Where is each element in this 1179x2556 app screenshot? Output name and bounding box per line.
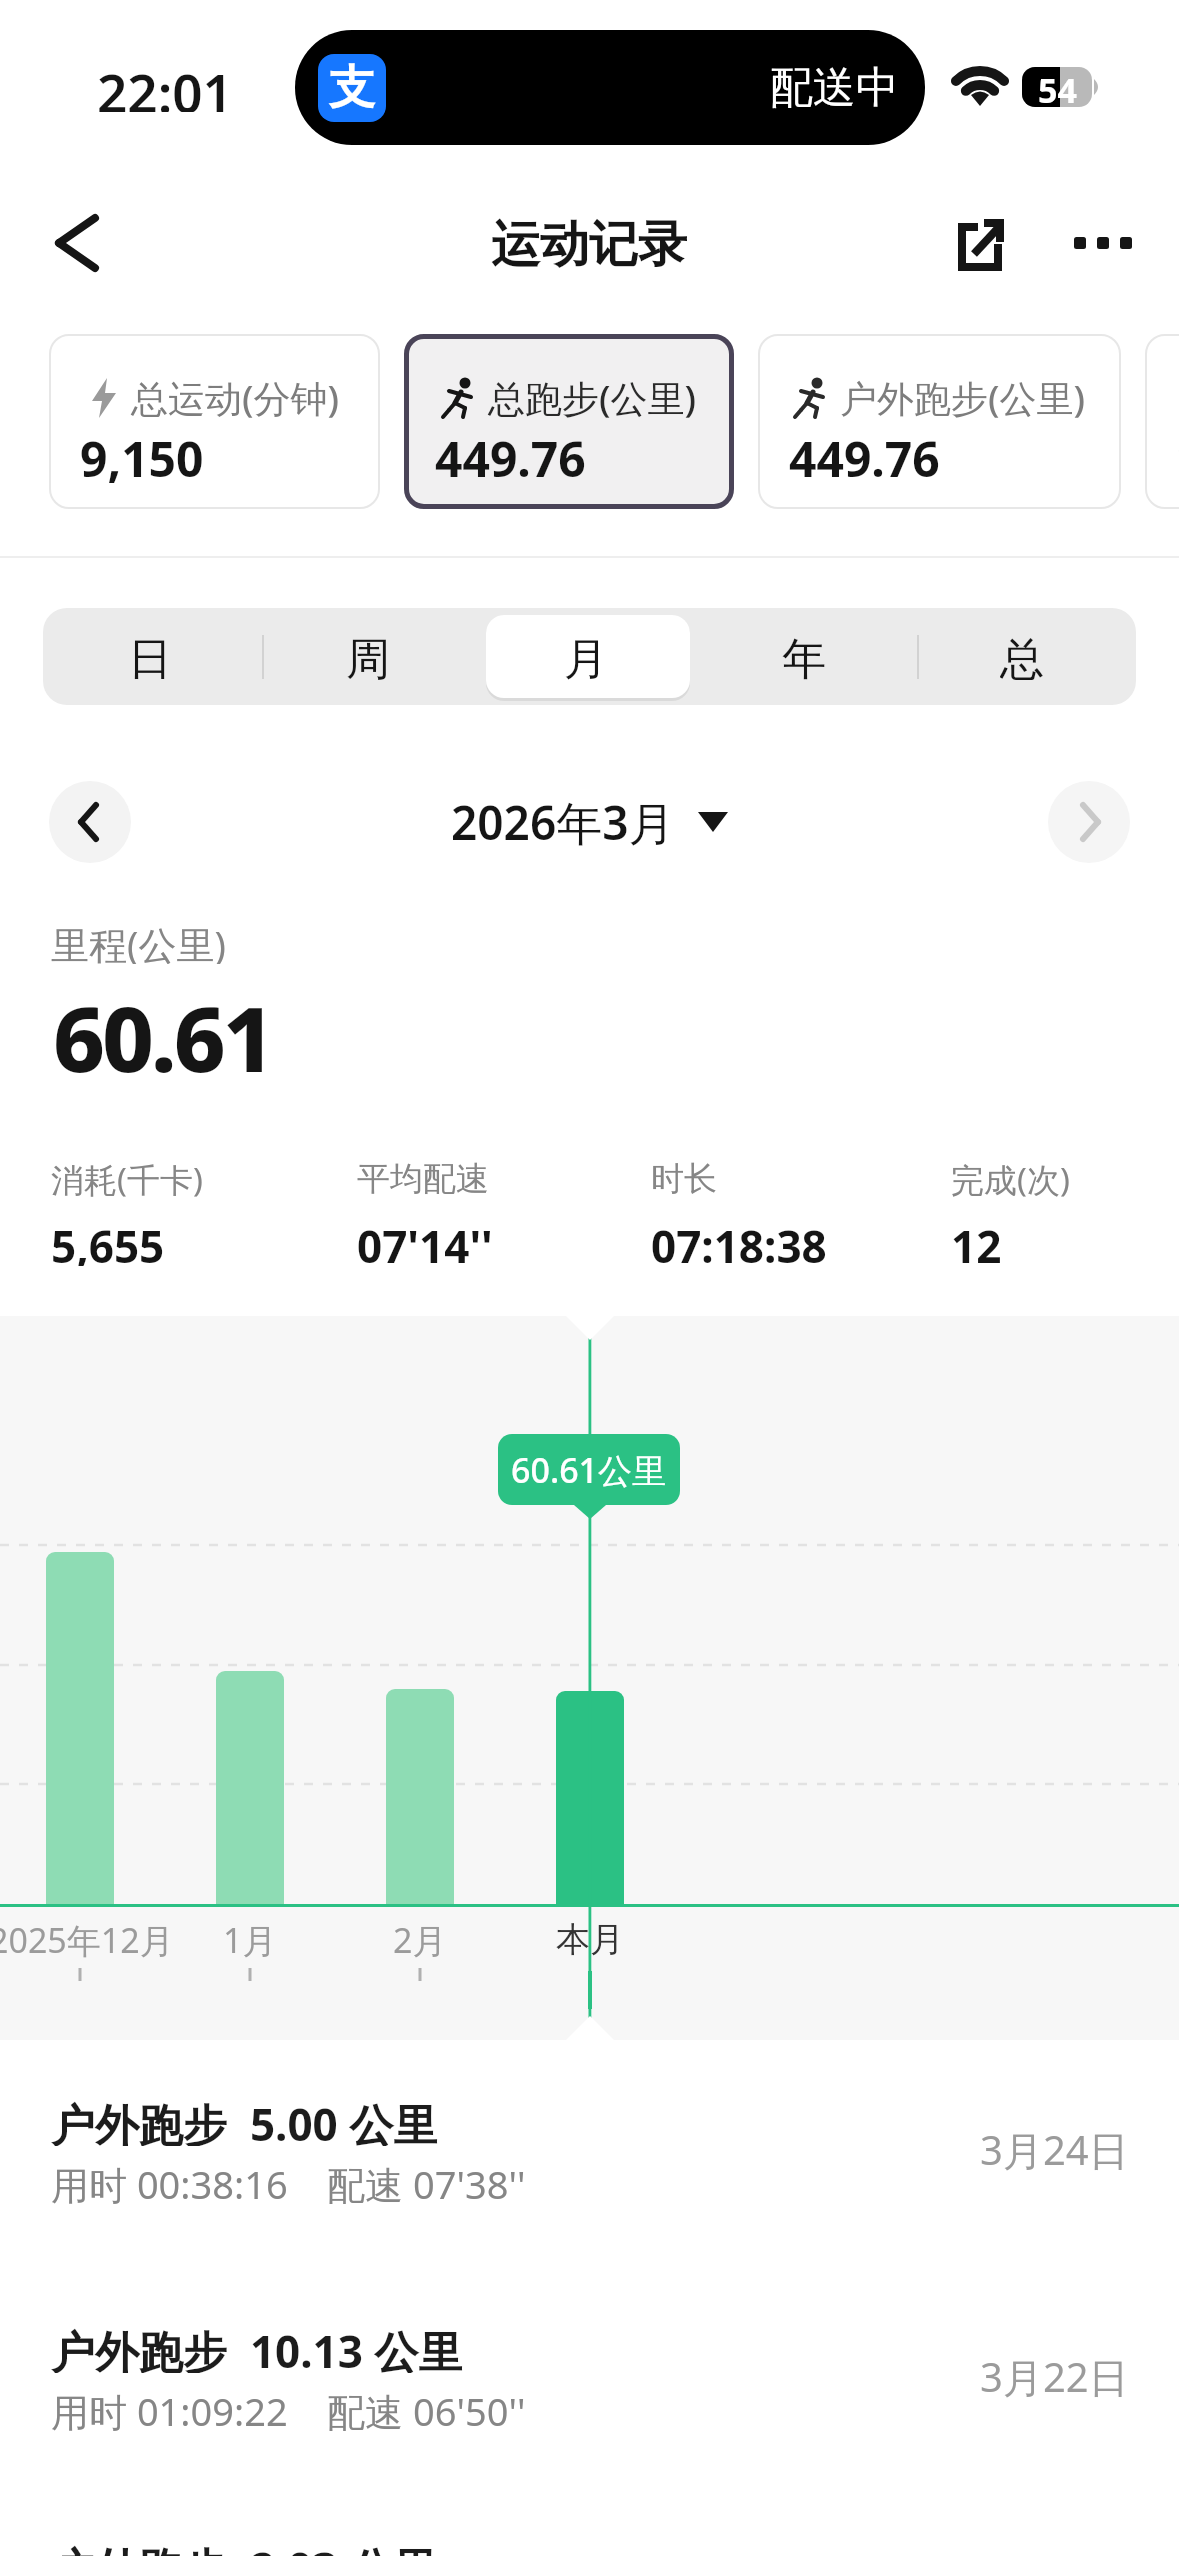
staticText: 周 bbox=[346, 632, 390, 682]
staticText: 07:18:38 bbox=[651, 1216, 827, 1266]
button[interactable]: 总骑行 bbox=[1145, 334, 1179, 509]
staticText: 户外跑步 5.00 公里 bbox=[51, 2094, 438, 2146]
button[interactable] bbox=[486, 615, 690, 698]
staticText: 2025年12月 bbox=[0, 1917, 174, 1961]
staticText: 总运动(分钟) bbox=[131, 372, 340, 423]
button[interactable]: 户外跑步(公里) bbox=[758, 334, 1121, 509]
staticText: 1月 bbox=[223, 1917, 277, 1961]
staticText: 年 bbox=[782, 632, 826, 682]
button[interactable]: 户外跑步 5.00 公里 bbox=[0, 2094, 1179, 2274]
staticText: 2026年3月 bbox=[451, 791, 675, 853]
button[interactable]: 周 bbox=[345, 632, 391, 682]
staticText: 时长 bbox=[651, 1158, 717, 1200]
button[interactable] bbox=[40, 205, 116, 281]
staticText: 12 bbox=[951, 1216, 1002, 1266]
button[interactable]: 2026年3月 bbox=[380, 791, 800, 853]
staticText: 本月 bbox=[556, 1918, 624, 1961]
staticText: 平均配速 bbox=[357, 1158, 489, 1200]
staticText: 日 bbox=[128, 632, 172, 682]
staticText: 总 bbox=[1000, 632, 1044, 682]
staticText: 完成(次) bbox=[951, 1157, 1070, 1201]
staticText: 3月24日 bbox=[980, 2122, 1129, 2172]
button[interactable] bbox=[49, 781, 131, 863]
staticText: 用时 01:09:22 配速 06'50'' bbox=[51, 2385, 526, 2431]
staticText: 消耗(千卡) bbox=[51, 1157, 203, 1201]
staticText: 22:01 bbox=[97, 56, 233, 112]
button[interactable]: 年 bbox=[781, 632, 827, 682]
staticText: 户外跑步(公里) bbox=[840, 372, 1086, 423]
button[interactable]: 总跑步(公里) bbox=[404, 334, 734, 509]
staticText: 里程(公里) bbox=[51, 918, 226, 964]
staticText: 户外跑步 2.03 公里 bbox=[51, 2538, 438, 2556]
staticText: 运动记录 bbox=[491, 214, 687, 274]
staticText: 60.61公里 bbox=[511, 1447, 667, 1493]
button[interactable]: 总运动(分钟) bbox=[49, 334, 380, 509]
button[interactable]: 户外跑步 2.03 公里 bbox=[0, 2538, 1179, 2556]
staticText: 449.76 bbox=[435, 426, 586, 491]
staticText: 449.76 bbox=[789, 426, 940, 491]
staticText: 户外跑步 10.13 公里 bbox=[51, 2321, 463, 2373]
button[interactable] bbox=[946, 208, 1014, 276]
staticText: 54 bbox=[1038, 67, 1077, 107]
staticText: 60.61 bbox=[53, 976, 272, 1076]
staticText: 总跑步(公里) bbox=[488, 372, 697, 423]
staticText: 2月 bbox=[393, 1917, 447, 1961]
staticText: 配送中 bbox=[770, 61, 899, 115]
staticText: 5,655 bbox=[51, 1216, 165, 1266]
staticText: 月 bbox=[564, 632, 608, 682]
staticText: 3月22日 bbox=[980, 2349, 1129, 2399]
staticText: 用时 00:38:16 配速 07'38'' bbox=[51, 2158, 526, 2204]
button[interactable]: 日 bbox=[127, 632, 173, 682]
staticText: 07'14'' bbox=[357, 1216, 493, 1266]
button[interactable] bbox=[1058, 208, 1138, 278]
button[interactable]: 总 bbox=[999, 632, 1045, 682]
staticText: 9,150 bbox=[80, 426, 204, 491]
button[interactable]: 户外跑步 10.13 公里 bbox=[0, 2321, 1179, 2501]
button[interactable]: 月 bbox=[563, 632, 609, 682]
button[interactable] bbox=[1048, 781, 1130, 863]
staticText: 支 bbox=[329, 59, 375, 117]
